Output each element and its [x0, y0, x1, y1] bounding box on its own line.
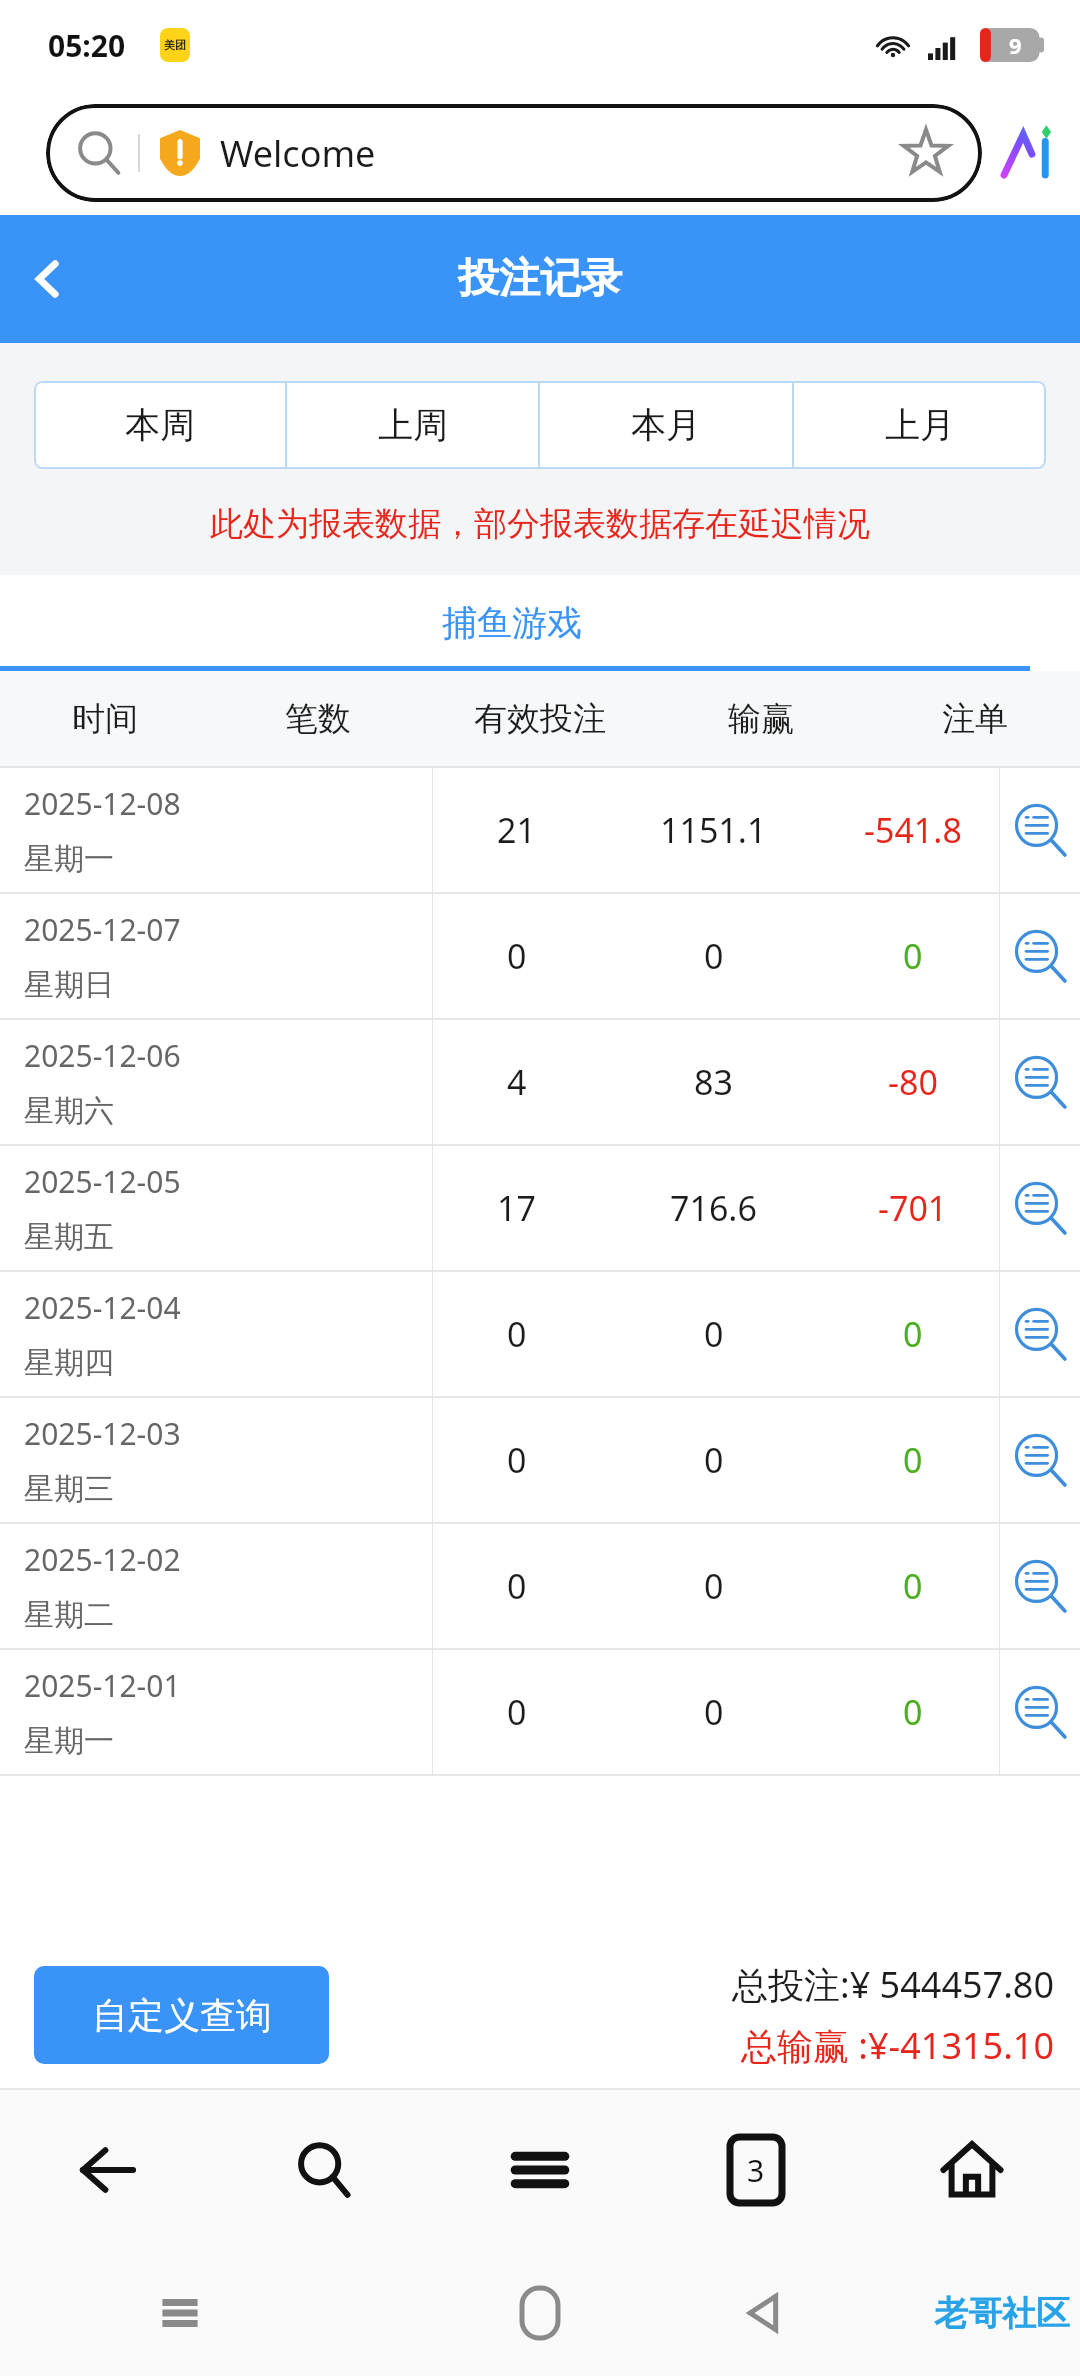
- staticText: 捕鱼游戏: [442, 601, 582, 645]
- button[interactable]: View order details: [1000, 1020, 1080, 1144]
- button[interactable]: Back: [0, 2090, 216, 2250]
- staticText: 输赢: [728, 698, 794, 740]
- button[interactable]: 2025-12-01: [0, 1650, 1080, 1776]
- staticText: 美团: [164, 38, 186, 52]
- staticText: 本周: [125, 403, 195, 447]
- button[interactable]: 自定义查询: [34, 1966, 329, 2064]
- staticText: 星期二: [24, 1596, 114, 1634]
- button[interactable]: 本月: [540, 381, 792, 469]
- button[interactable]: 2025-12-08: [0, 768, 1080, 894]
- staticText: 2025-12-01: [24, 1665, 181, 1706]
- staticText: 0: [507, 1311, 527, 1357]
- staticText: 0: [704, 1311, 724, 1357]
- button[interactable]: 2025-12-02: [0, 1524, 1080, 1650]
- staticText: 星期四: [24, 1344, 114, 1382]
- staticText: 05:20: [48, 25, 126, 66]
- staticText: 总投注:¥ 544457.80: [732, 1960, 1054, 2009]
- button[interactable]: Menu: [432, 2090, 648, 2250]
- staticText: 星期三: [24, 1470, 114, 1508]
- button[interactable]: Recents: [0, 2250, 360, 2376]
- staticText: 上月: [885, 403, 955, 447]
- staticText: 9: [1009, 30, 1022, 60]
- staticText: 老哥社区: [934, 2292, 1070, 2335]
- button[interactable]: View order details: [1000, 1272, 1080, 1396]
- staticText: 0: [903, 1563, 923, 1609]
- staticText: 0: [903, 1689, 923, 1735]
- staticText: 3: [747, 2150, 765, 2191]
- button[interactable]: 本周: [34, 381, 285, 469]
- staticText: 716.6: [670, 1185, 757, 1231]
- staticText: 星期日: [24, 966, 114, 1004]
- button[interactable]: Tabs: [648, 2090, 864, 2250]
- button[interactable]: 上周: [287, 381, 538, 469]
- staticText: 总输赢 :¥-41315.10: [741, 2021, 1054, 2070]
- staticText: 2025-12-02: [24, 1539, 181, 1580]
- staticText: 投注记录: [458, 253, 622, 305]
- staticText: 2025-12-07: [24, 909, 181, 950]
- button[interactable]: Back: [0, 231, 96, 327]
- staticText: 星期一: [24, 1722, 114, 1760]
- staticText: Welcome: [220, 129, 900, 178]
- button[interactable]: Bookmark: [900, 127, 952, 179]
- staticText: 0: [903, 1437, 923, 1483]
- staticText: 0: [704, 1437, 724, 1483]
- staticText: 本月: [631, 403, 701, 447]
- staticText: 0: [704, 1563, 724, 1609]
- button[interactable]: Welcome: [46, 104, 982, 202]
- staticText: 星期五: [24, 1218, 114, 1256]
- staticText: 4: [507, 1059, 527, 1105]
- staticText: 有效投注: [474, 698, 606, 740]
- button[interactable]: View order details: [1000, 768, 1080, 892]
- button[interactable]: 2025-12-03: [0, 1398, 1080, 1524]
- staticText: 0: [507, 933, 527, 979]
- button[interactable]: View order details: [1000, 1146, 1080, 1270]
- staticText: 17: [497, 1185, 536, 1231]
- button[interactable]: 2025-12-04: [0, 1272, 1080, 1398]
- button[interactable]: 捕鱼游戏: [0, 575, 1030, 671]
- staticText: -701: [878, 1185, 948, 1231]
- button[interactable]: View order details: [1000, 1650, 1080, 1774]
- staticText: 笔数: [285, 698, 351, 740]
- staticText: 2025-12-06: [24, 1035, 181, 1076]
- staticText: 上周: [378, 403, 448, 447]
- button[interactable]: 2025-12-06: [0, 1020, 1080, 1146]
- button[interactable]: Home: [360, 2250, 720, 2376]
- staticText: -541.8: [864, 807, 962, 853]
- staticText: 0: [704, 1689, 724, 1735]
- staticText: 21: [497, 807, 536, 853]
- staticText: 星期一: [24, 840, 114, 878]
- button[interactable]: 2025-12-05: [0, 1146, 1080, 1272]
- staticText: 0: [507, 1689, 527, 1735]
- staticText: 自定义查询: [92, 1993, 272, 2038]
- button[interactable]: Back: [720, 2250, 1080, 2376]
- staticText: 2025-12-04: [24, 1287, 181, 1328]
- button[interactable]: 上月: [794, 381, 1046, 469]
- button[interactable]: View order details: [1000, 894, 1080, 1018]
- staticText: 星期六: [24, 1092, 114, 1130]
- button[interactable]: AI assistant: [1000, 124, 1058, 182]
- staticText: 1151.1: [660, 807, 767, 853]
- staticText: 2025-12-05: [24, 1161, 181, 1202]
- staticText: 0: [903, 933, 923, 979]
- staticText: 0: [507, 1437, 527, 1483]
- button[interactable]: Home: [864, 2090, 1080, 2250]
- staticText: 83: [694, 1059, 733, 1105]
- staticText: 2025-12-03: [24, 1413, 181, 1454]
- button[interactable]: View order details: [1000, 1398, 1080, 1522]
- button[interactable]: 2025-12-07: [0, 894, 1080, 1020]
- staticText: 0: [903, 1311, 923, 1357]
- staticText: -80: [888, 1059, 938, 1105]
- button[interactable]: Search: [216, 2090, 432, 2250]
- staticText: 此处为报表数据，部分报表数据存在延迟情况: [210, 503, 870, 545]
- button[interactable]: View order details: [1000, 1524, 1080, 1648]
- staticText: 注单: [942, 698, 1008, 740]
- staticText: 2025-12-08: [24, 783, 181, 824]
- staticText: 时间: [72, 698, 138, 740]
- staticText: 0: [507, 1563, 527, 1609]
- staticText: 0: [704, 933, 724, 979]
